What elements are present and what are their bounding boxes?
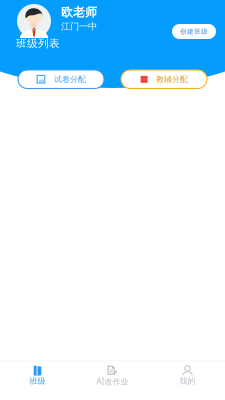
- staticText: 江门一中: [61, 21, 97, 32]
- button[interactable]: 试卷分配: [18, 70, 104, 88]
- staticText: 创建班级: [180, 27, 208, 36]
- button[interactable]: AI改作业: [75, 361, 150, 400]
- button[interactable]: 班级: [0, 361, 75, 400]
- staticText: 教辅分配: [156, 74, 188, 84]
- staticText: 班级列表: [16, 37, 60, 50]
- staticText: AI改作业: [96, 376, 128, 387]
- staticText: 试卷分配: [54, 74, 86, 84]
- staticText: 欧老师: [61, 5, 97, 20]
- button[interactable]: 我的: [150, 361, 225, 400]
- staticText: 班级: [29, 376, 45, 386]
- button[interactable]: 创建班级: [172, 24, 216, 39]
- staticText: 我的: [179, 376, 195, 386]
- button[interactable]: 教辅分配: [121, 70, 207, 88]
